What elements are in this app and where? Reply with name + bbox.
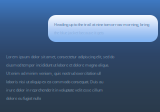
staticText: Lorem ipsum dolor sit amet, consectetur …	[6, 54, 114, 59]
staticText: Heading up to the trail at nine tomorrow…	[54, 22, 149, 27]
staticText: irure dolor in reprehenderit in voluptat…	[6, 87, 103, 92]
staticText: dolore eu fugiat nulla	[6, 96, 41, 101]
staticText: the blue jacket because it gets	[54, 30, 104, 35]
staticText: Ut enim ad minim veniam, quis nostrud ex…	[6, 71, 101, 76]
button[interactable]: Heading up to the trail at nine tomorrow…	[48, 15, 158, 42]
staticText: eiusmod tempor incididunt ut labore et d…	[6, 62, 109, 68]
staticText: laboris nisi ut aliquip ex ea commodo co…	[6, 79, 103, 84]
